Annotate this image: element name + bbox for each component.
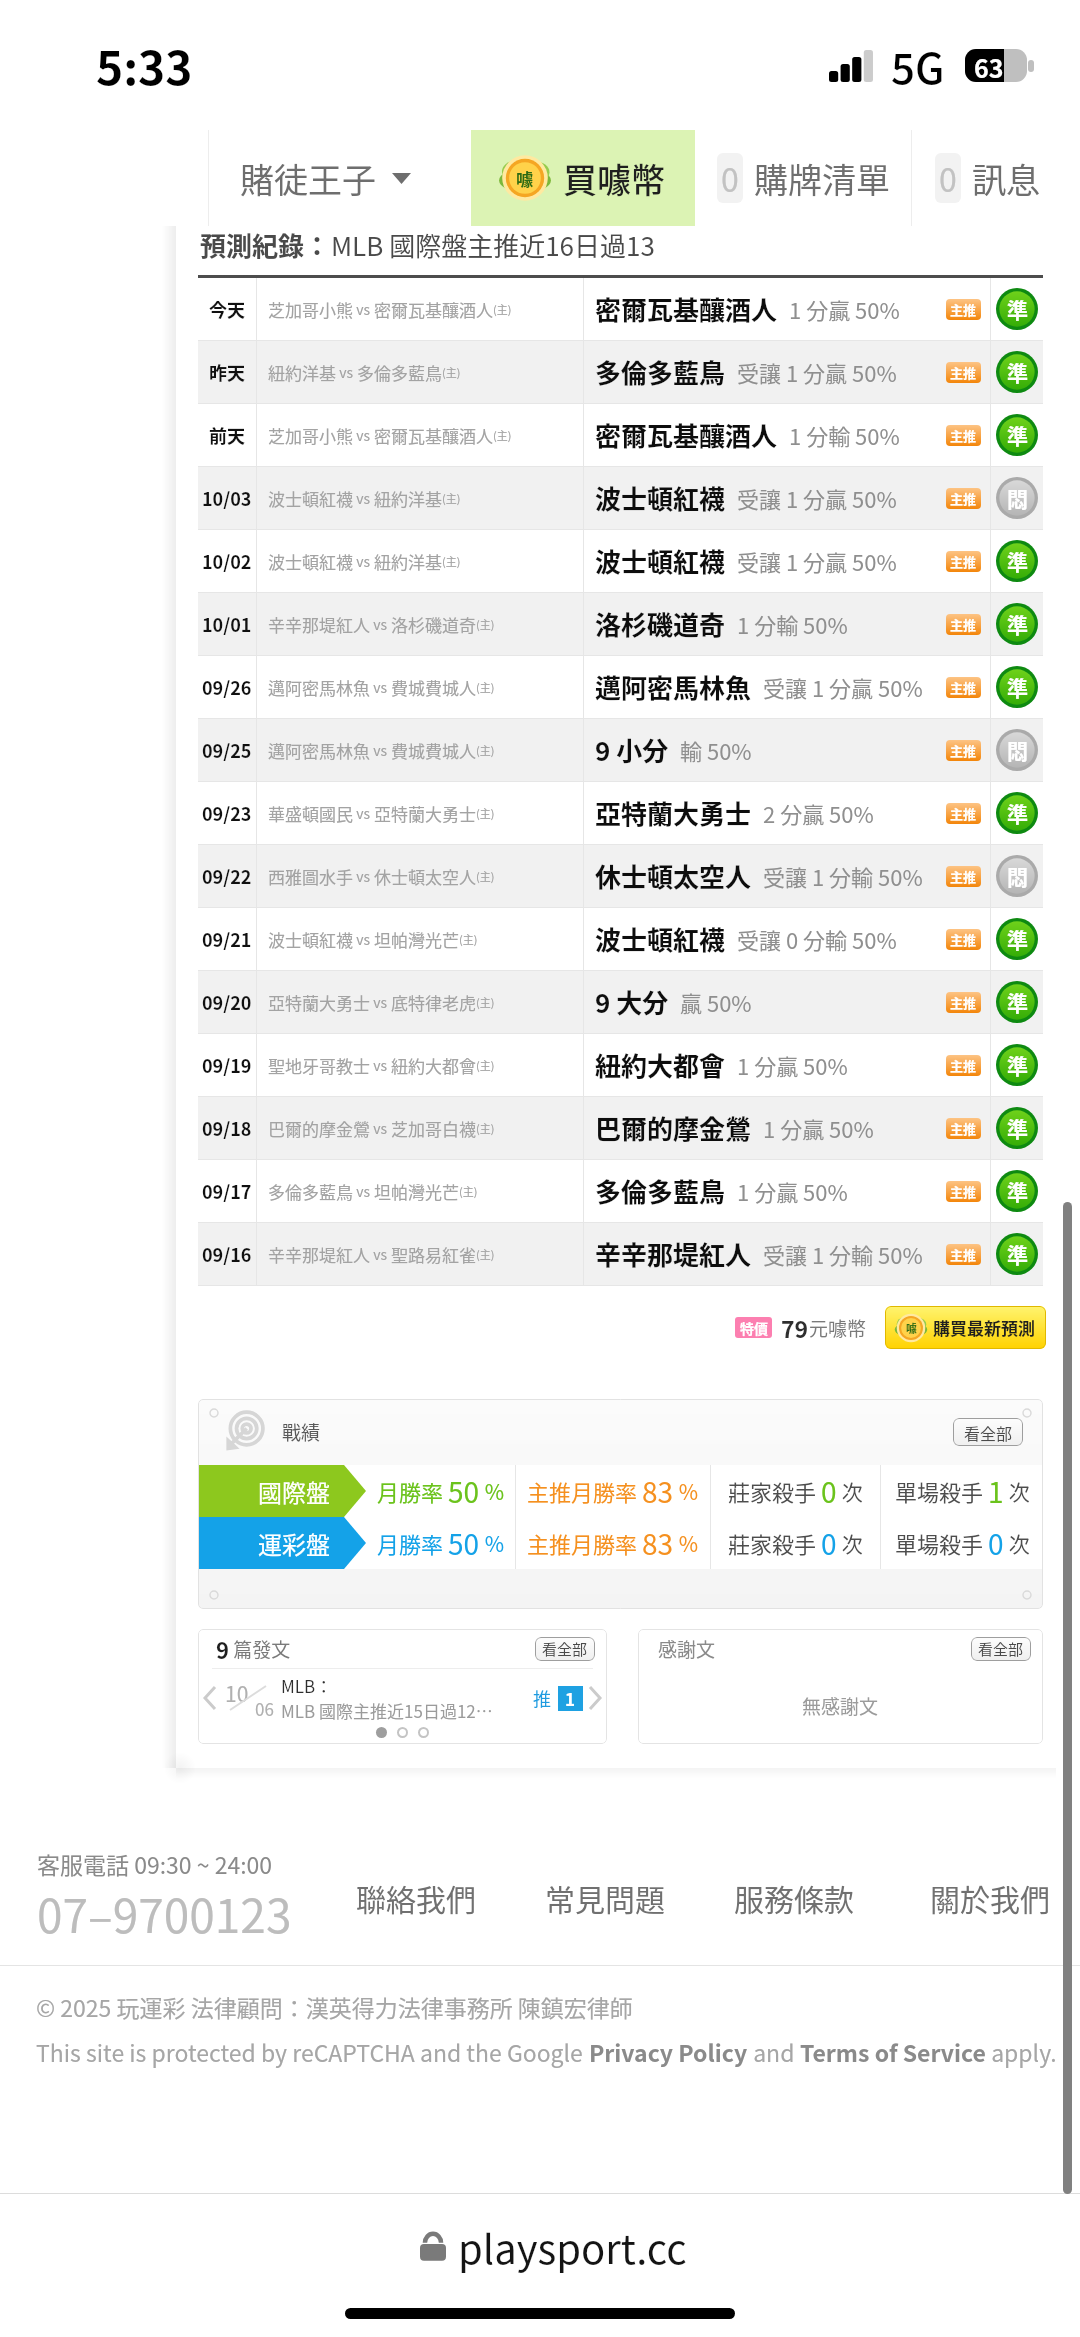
staticText: 9 大分 <box>595 983 669 1021</box>
staticText: 次 <box>837 1528 863 1558</box>
button[interactable]: 噱 <box>471 130 695 226</box>
staticText: 訊息 <box>972 154 1040 203</box>
staticText: 莊家殺手 <box>728 1475 821 1507</box>
staticText: 79 <box>781 1311 809 1344</box>
button[interactable]: 09/17 <box>198 1160 1043 1222</box>
staticText: 噱 <box>906 1320 917 1336</box>
staticText: 1 分贏 50% <box>737 1175 848 1207</box>
staticText: 波士頓紅襪 <box>268 927 353 952</box>
staticText: 巴爾的摩金鶯 <box>268 1116 370 1141</box>
staticText: 9 <box>216 1633 229 1665</box>
staticText: and <box>748 2035 800 2068</box>
staticText: (主) <box>493 427 512 443</box>
button[interactable]: 服務條款 <box>734 1866 854 1929</box>
button[interactable]: 昨天 <box>198 341 1043 403</box>
button[interactable]: 0 <box>695 130 911 226</box>
button[interactable]: 看全部 <box>535 1637 595 1661</box>
staticText: 購買最新預測 <box>933 1315 1035 1340</box>
staticText: % <box>480 1528 505 1558</box>
staticText: 紐約洋基 <box>374 486 442 511</box>
button[interactable]: 看全部 <box>971 1637 1031 1661</box>
staticText: 聖地牙哥教士 <box>268 1053 370 1078</box>
button[interactable]: 09/25 <box>198 719 1043 781</box>
staticText: 買噱幣 <box>563 154 665 203</box>
button[interactable]: 前天 <box>198 404 1043 466</box>
staticText: 06 <box>255 1696 274 1721</box>
staticText: 1 分贏 50% <box>763 1112 874 1144</box>
button[interactable]: 關於我們 <box>930 1866 1050 1929</box>
staticText: 關於我們 <box>930 1876 1050 1919</box>
button[interactable]: 09/21 <box>198 908 1043 970</box>
button[interactable]: 09/26 <box>198 656 1043 718</box>
staticText: 受讓 1 分贏 50% <box>737 356 897 388</box>
staticText: (主) <box>476 994 495 1010</box>
staticText: 亞特蘭大勇士 <box>595 794 752 832</box>
staticText: 主推 <box>950 426 977 445</box>
staticText: 準 <box>1007 420 1028 450</box>
staticText: 主推 <box>950 363 977 382</box>
button[interactable]: Terms of Service <box>800 2035 986 2068</box>
staticText: 密爾瓦基釀酒人 <box>595 290 778 328</box>
button[interactable]: 10/03 <box>198 467 1043 529</box>
staticText: 元噱幣 <box>809 1314 867 1342</box>
staticText: (主) <box>459 1183 478 1199</box>
button[interactable]: 09/16 <box>198 1223 1043 1285</box>
staticText: 邁阿密馬林魚 <box>268 675 370 700</box>
button[interactable]: 09/19 <box>198 1034 1043 1096</box>
staticText: vs <box>370 1118 391 1138</box>
staticText: 悶 <box>1007 483 1028 513</box>
button[interactable]: 09/23 <box>198 782 1043 844</box>
staticText: 1 分輸 50% <box>737 608 848 640</box>
staticText: (主) <box>442 364 461 380</box>
staticText: 09/23 <box>202 800 252 826</box>
staticText: (主) <box>476 1057 495 1073</box>
staticText: 紐約大都會 <box>391 1053 476 1078</box>
staticText: 10/03 <box>202 485 252 511</box>
staticText: 多倫多藍鳥 <box>268 1179 353 1204</box>
staticText: 0 <box>821 1523 837 1564</box>
staticText: 9 小分 <box>595 731 669 769</box>
staticText: 辛辛那堤紅人 <box>268 612 370 637</box>
staticText: vs <box>353 425 374 445</box>
staticText: 10/01 <box>202 611 252 637</box>
staticText: 客服電話 09:30 ~ 24:00 <box>37 1847 273 1880</box>
staticText: 準 <box>1007 357 1028 387</box>
staticText: 主推 <box>950 678 977 697</box>
staticText: (主) <box>493 301 512 317</box>
staticText: 主推 <box>950 930 977 949</box>
button[interactable]: 09/18 <box>198 1097 1043 1159</box>
button[interactable]: 09/20 <box>198 971 1043 1033</box>
staticText: 主推 <box>950 1245 977 1264</box>
staticText: 多倫多藍鳥 <box>357 360 442 385</box>
button[interactable]: 10/01 <box>198 593 1043 655</box>
staticText: vs <box>353 803 374 823</box>
button[interactable]: 看全部 <box>953 1418 1023 1446</box>
button[interactable]: 09/22 <box>198 845 1043 907</box>
staticText: 聖路易紅雀 <box>391 1242 476 1267</box>
button[interactable]: 常見問題 <box>545 1866 665 1929</box>
button[interactable]: 10/02 <box>198 530 1043 592</box>
staticText: 5G <box>891 35 945 96</box>
staticText: 準 <box>1007 1050 1028 1080</box>
button[interactable]: 噱 <box>885 1306 1046 1349</box>
staticText: % <box>674 1528 699 1558</box>
staticText: 西雅圖水手 <box>268 864 353 889</box>
staticText: 主推 <box>950 1056 977 1075</box>
staticText: 感謝文 <box>658 1635 716 1663</box>
staticText: 主推 <box>950 489 977 508</box>
button[interactable]: 賭徒王子 <box>209 130 471 226</box>
staticText: 83 <box>642 1523 674 1564</box>
button[interactable]: Next post <box>583 1669 607 1727</box>
button[interactable]: 0 <box>912 130 1062 226</box>
staticText: © 2025 玩運彩 法律顧問：漢英得力法律事務所 陳鎮宏律師 <box>36 1990 633 2023</box>
staticText: (主) <box>476 679 495 695</box>
staticText: 09/16 <box>202 1241 252 1267</box>
staticText: (主) <box>476 868 495 884</box>
staticText: 多倫多藍鳥 <box>595 1172 726 1210</box>
staticText: (主) <box>476 742 495 758</box>
button[interactable]: 聯絡我們 <box>356 1866 476 1929</box>
button[interactable]: Privacy Policy <box>589 2035 748 2068</box>
button[interactable]: Previous post <box>198 1669 222 1727</box>
button[interactable]: 今天 <box>198 278 1043 340</box>
staticText: vs <box>336 362 357 382</box>
